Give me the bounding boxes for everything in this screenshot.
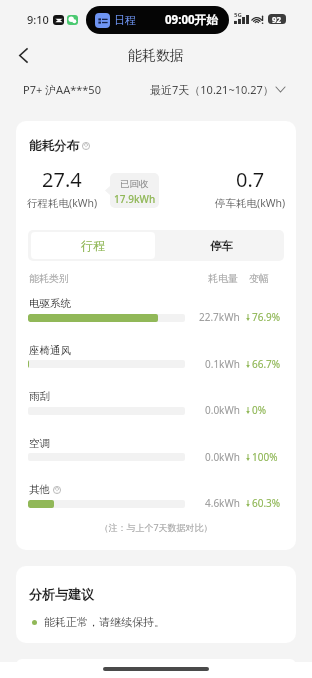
staticText: 4.6kWh bbox=[205, 496, 240, 510]
staticText: 日程 bbox=[114, 13, 136, 27]
staticText: 0.0kWh bbox=[205, 450, 240, 464]
staticText: 行程 bbox=[81, 238, 105, 253]
staticText: 能耗正常，请继续保持。 bbox=[44, 615, 165, 629]
staticText: 分析与建议 bbox=[29, 586, 94, 602]
staticText: 雨刮 bbox=[29, 390, 50, 403]
button[interactable]: 最近7天（10.21~10.27） bbox=[150, 82, 285, 97]
staticText: 22.7kWh bbox=[199, 310, 240, 324]
staticText: 能耗类别 bbox=[29, 272, 69, 285]
staticText: 停车耗电(kWh) bbox=[215, 196, 286, 210]
staticText: 66.7% bbox=[252, 357, 281, 371]
staticText: 已回收 bbox=[120, 178, 149, 190]
staticText: 0.1kWh bbox=[205, 357, 240, 371]
button[interactable]: Back bbox=[6, 38, 40, 72]
staticText: 变幅 bbox=[249, 272, 269, 285]
staticText: 最近7天（10.21~10.27） bbox=[150, 82, 274, 97]
staticText: 能耗分布 bbox=[29, 138, 79, 154]
staticText: 76.9% bbox=[252, 310, 281, 324]
button[interactable]: Calendar event bbox=[86, 6, 229, 34]
staticText: （注：与上个7天数据对比） bbox=[99, 521, 213, 533]
staticText: 5G bbox=[234, 11, 242, 19]
button[interactable]: P7+ 沪AA***50 bbox=[23, 82, 101, 97]
staticText: 耗电量 bbox=[208, 272, 238, 285]
staticText: 能耗数据 bbox=[128, 47, 184, 65]
button[interactable]: 停车 bbox=[158, 230, 284, 261]
staticText: 60.3% bbox=[252, 496, 281, 510]
button[interactable]: 行程 bbox=[31, 232, 155, 259]
staticText: 9:10 bbox=[27, 12, 49, 27]
staticText: 0% bbox=[252, 403, 267, 417]
staticText: 电驱系统 bbox=[29, 297, 71, 310]
staticText: 0.7 bbox=[236, 166, 265, 193]
staticText: 17.9kWh bbox=[114, 192, 156, 206]
staticText: 27.4 bbox=[42, 166, 82, 193]
staticText: 0.0kWh bbox=[205, 403, 240, 417]
staticText: 92 bbox=[272, 14, 282, 24]
staticText: 100% bbox=[252, 450, 278, 464]
staticText: 空调 bbox=[29, 437, 50, 450]
staticText: 其他 bbox=[29, 483, 50, 496]
staticText: 行程耗电(kWh) bbox=[27, 196, 98, 210]
staticText: 停车 bbox=[210, 239, 233, 253]
staticText: 座椅通风 bbox=[29, 344, 71, 357]
staticText: 09:00开始 bbox=[165, 12, 218, 28]
